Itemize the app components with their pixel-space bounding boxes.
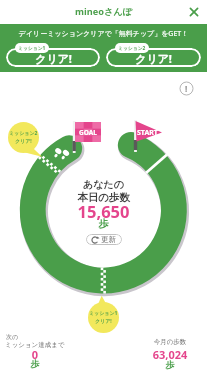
staticText: あなたの xyxy=(0,178,207,191)
staticText: デイリーミッションクリアで「無料チップ」をGET！ xyxy=(0,29,207,39)
button[interactable]: Close xyxy=(186,4,202,20)
staticText: 15,650 xyxy=(0,200,207,222)
staticText: ! xyxy=(185,83,188,94)
staticText: 今月の歩数 xyxy=(138,338,202,346)
staticText: 0 xyxy=(3,347,67,362)
button[interactable]: 更新 xyxy=(86,234,122,245)
staticText: クリア! xyxy=(135,51,172,66)
staticText: ミッション2 xyxy=(9,130,38,137)
staticText: ミッション1 xyxy=(89,310,118,317)
staticText: 歩 xyxy=(3,358,67,369)
staticText: 歩 xyxy=(0,217,207,230)
staticText: 63,024 xyxy=(138,347,202,362)
staticText: クリア! xyxy=(95,318,112,325)
button[interactable]: クリア! xyxy=(6,48,100,67)
staticText: mineoさんぽ xyxy=(75,5,133,18)
staticText: 本日の歩数 xyxy=(0,191,207,204)
staticText: クリア! xyxy=(35,51,72,66)
staticText: GOAL xyxy=(79,128,97,137)
staticText: ミッション2 xyxy=(118,45,146,52)
staticText: ミッション1 xyxy=(18,45,46,52)
staticText: ミッション達成まで xyxy=(5,341,65,349)
button[interactable]: Information xyxy=(179,81,194,96)
button[interactable]: クリア! xyxy=(106,48,201,67)
staticText: 次の xyxy=(6,333,19,341)
staticText: 更新 xyxy=(101,235,116,244)
staticText: 歩 xyxy=(138,359,202,370)
staticText: START xyxy=(137,128,158,138)
staticText: クリア! xyxy=(15,138,32,145)
